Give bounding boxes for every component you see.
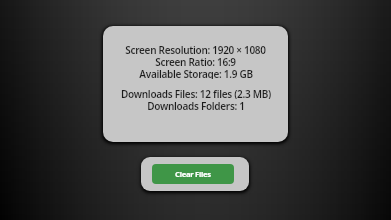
staticText: Available Storage: 1.9 GB xyxy=(139,67,253,79)
staticText: Clear Files xyxy=(175,169,211,179)
staticText: Screen Ratio: 16:9 xyxy=(155,55,236,67)
button[interactable]: Clear Files xyxy=(152,164,234,184)
staticText: Downloads Files: 12 files (2.3 MB) xyxy=(121,87,271,99)
staticText: Screen Resolution: 1920 × 1080 xyxy=(125,43,266,55)
staticText: Downloads Folders: 1 xyxy=(147,99,245,111)
